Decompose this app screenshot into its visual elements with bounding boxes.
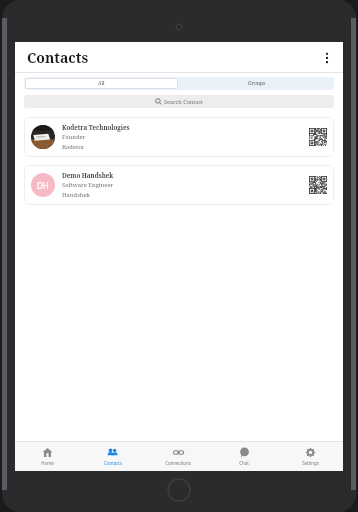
staticText: Contacts	[104, 460, 122, 466]
staticText: DH	[37, 180, 49, 191]
button[interactable]: Settings	[277, 442, 343, 471]
button[interactable]: DH	[24, 165, 334, 205]
staticText: Handshek	[62, 191, 90, 199]
staticText: Kodetra	[62, 143, 84, 151]
staticText: Founder	[62, 133, 86, 141]
staticText: Home	[41, 460, 54, 466]
button[interactable]: Contacts	[80, 442, 145, 471]
button[interactable]: Kodetra Technologies	[24, 117, 334, 157]
button[interactable]: Home	[15, 442, 80, 471]
button[interactable]: Search Contact	[24, 95, 334, 108]
staticText: Chat	[239, 460, 249, 466]
staticText: Kodetra Technologies	[62, 123, 130, 131]
button[interactable]: More options	[317, 48, 337, 68]
staticText: Software Engineer	[62, 181, 114, 189]
button[interactable]: Chat	[211, 442, 277, 471]
staticText: Contacts	[27, 48, 89, 67]
staticText: All	[98, 80, 105, 87]
staticText: Settings	[302, 460, 319, 466]
button[interactable]: Groups	[179, 77, 334, 90]
button[interactable]: All	[25, 78, 178, 89]
button[interactable]: Connections	[145, 442, 211, 471]
staticText: Groups	[248, 80, 266, 87]
staticText: Demo Handshek	[62, 171, 114, 179]
staticText: Connections	[165, 460, 191, 466]
staticText: Search Contact	[164, 98, 204, 105]
